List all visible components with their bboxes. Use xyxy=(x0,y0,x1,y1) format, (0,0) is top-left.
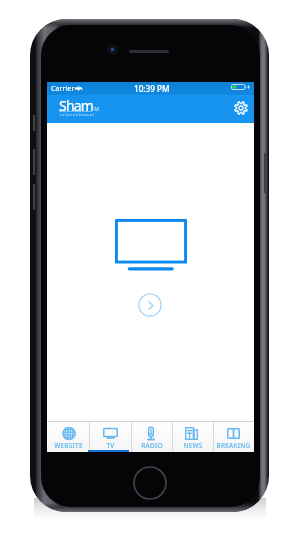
staticText: TV xyxy=(106,441,115,450)
staticText: WEBSITE xyxy=(54,441,83,450)
staticText: international xyxy=(60,112,95,117)
staticText: 10:39 PM xyxy=(134,83,170,94)
button[interactable]: Next xyxy=(138,293,162,317)
staticText: NEWS xyxy=(183,441,203,450)
staticText: RADIO xyxy=(141,441,163,450)
staticText: FM xyxy=(92,106,99,113)
staticText: Sham xyxy=(59,96,94,115)
button[interactable]: BREAKING xyxy=(213,422,254,452)
staticText: BREAKING xyxy=(216,441,251,450)
button[interactable]: RADIO xyxy=(131,422,172,452)
button[interactable]: TV xyxy=(89,422,131,452)
button[interactable]: WEBSITE xyxy=(47,422,89,452)
staticText: Carrier xyxy=(51,83,75,93)
button[interactable]: Settings xyxy=(234,101,248,115)
button[interactable]: NEWS xyxy=(172,422,213,452)
